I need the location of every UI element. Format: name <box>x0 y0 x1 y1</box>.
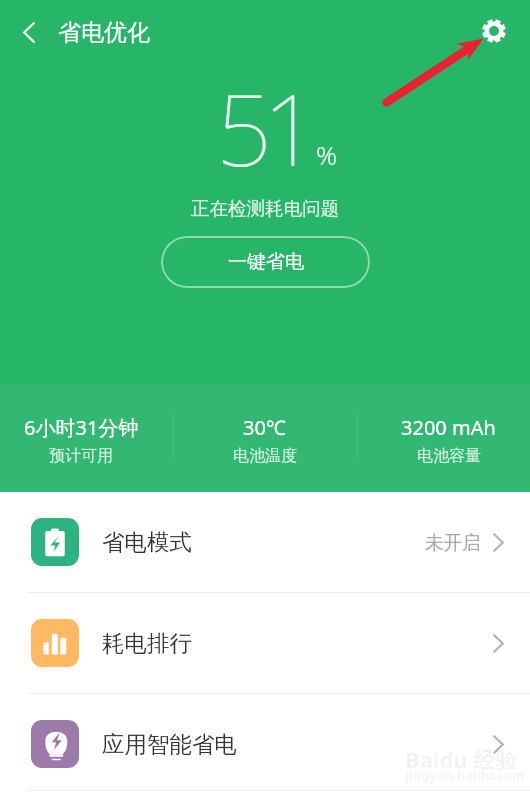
staticText: % <box>316 137 338 172</box>
staticText: Baidu 经验 <box>405 744 518 774</box>
button[interactable]: 省电模式 <box>0 492 530 592</box>
staticText: 正在检测耗电问题 <box>0 197 530 220</box>
button[interactable]: Back <box>0 0 58 64</box>
staticText: 省电优化 <box>58 18 150 47</box>
staticText: 51 <box>216 61 310 194</box>
staticText: 应用智能省电 <box>102 730 237 758</box>
button[interactable]: Settings <box>466 0 530 64</box>
staticText: 未开启 <box>425 531 481 554</box>
staticText: 耗电排行 <box>102 629 192 657</box>
staticText: 一键省电 <box>228 250 304 274</box>
staticText: 6小时31分钟 <box>24 414 139 441</box>
staticText: 预计可用 <box>49 446 113 466</box>
button[interactable]: 耗电排行 <box>0 593 530 693</box>
staticText: 30℃ <box>243 414 286 441</box>
staticText: 3200 mAh <box>401 414 496 441</box>
button[interactable]: 一键省电 <box>161 236 370 288</box>
staticText: jingyan.baidu.com <box>405 766 525 784</box>
staticText: 电池容量 <box>417 446 481 466</box>
staticText: 省电模式 <box>102 528 192 556</box>
staticText: 电池温度 <box>233 446 297 466</box>
button[interactable]: 应用智能省电 <box>0 694 530 792</box>
